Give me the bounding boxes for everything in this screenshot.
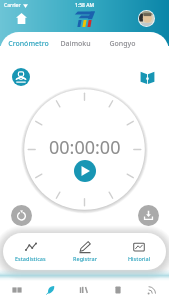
button[interactable]: Practice — [33, 279, 67, 300]
button[interactable]: Meditation — [12, 68, 30, 86]
staticText: Carrier — [4, 2, 21, 9]
button[interactable]: Feed — [135, 279, 169, 300]
staticText: Cronómetro — [8, 39, 49, 49]
button[interactable]: Save — [138, 205, 159, 226]
button[interactable]: Daimoku — [55, 35, 96, 53]
button[interactable]: Profile — [139, 11, 154, 26]
button[interactable]: Estadísticas — [3, 233, 58, 270]
button[interactable]: Documents — [101, 279, 135, 300]
staticText: 00:00:00 — [49, 135, 121, 160]
staticText: Daimoku — [60, 39, 91, 49]
staticText: Registrar — [73, 255, 97, 262]
button[interactable]: Book — [138, 68, 156, 86]
button[interactable]: Registrar — [58, 233, 112, 270]
button[interactable]: Historial — [112, 233, 166, 270]
button[interactable]: Library — [0, 279, 33, 300]
staticText: Estadísticas — [15, 255, 46, 262]
button[interactable]: Start — [74, 160, 96, 182]
button[interactable]: Reset — [11, 205, 32, 226]
staticText: 1:58 AM — [75, 2, 95, 9]
button[interactable]: Cronómetro — [4, 35, 53, 53]
staticText: Historial — [128, 255, 151, 262]
button[interactable]: Gongyo — [101, 35, 143, 53]
button[interactable]: Home — [13, 10, 29, 26]
staticText: Gongyo — [109, 39, 136, 49]
button[interactable]: Books — [67, 279, 101, 300]
